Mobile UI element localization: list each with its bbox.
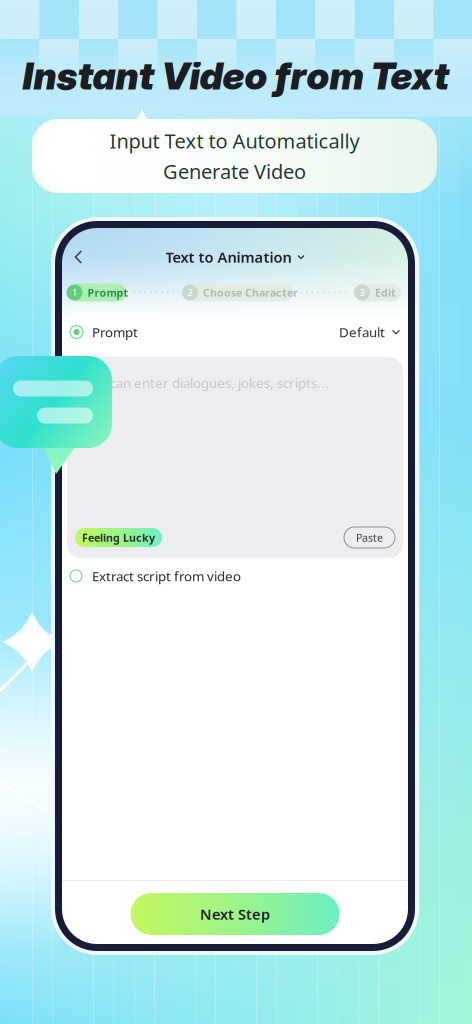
staticText: Choose Character [203, 285, 298, 300]
staticText: Instant Video from Text [22, 53, 449, 99]
staticText: You can enter dialogues, jokes, scripts.… [84, 374, 329, 392]
button[interactable]: Back [62, 239, 94, 275]
staticText: Generate Video [163, 158, 306, 185]
staticText: Prompt [92, 323, 138, 341]
staticText: 2 [187, 286, 192, 299]
button[interactable]: Paste [344, 527, 395, 548]
button[interactable]: Text to Animation [165, 238, 304, 276]
staticText: Text to Animation [165, 247, 291, 267]
staticText: Extract script from video [92, 567, 241, 585]
button[interactable]: Default [339, 315, 400, 349]
staticText: 1 [72, 286, 77, 299]
button[interactable]: Feeling Lucky [75, 528, 162, 547]
staticText: Input Text to Automatically [109, 127, 359, 154]
staticText: Edit [375, 285, 396, 300]
staticText: 3 [359, 286, 364, 299]
staticText: Paste [356, 530, 383, 545]
staticText: Default [339, 323, 385, 341]
staticText: Feeling Lucky [82, 530, 155, 545]
staticText: Prompt [87, 285, 128, 300]
button[interactable]: Next Step [130, 893, 339, 935]
staticText: Next Step [200, 904, 270, 924]
